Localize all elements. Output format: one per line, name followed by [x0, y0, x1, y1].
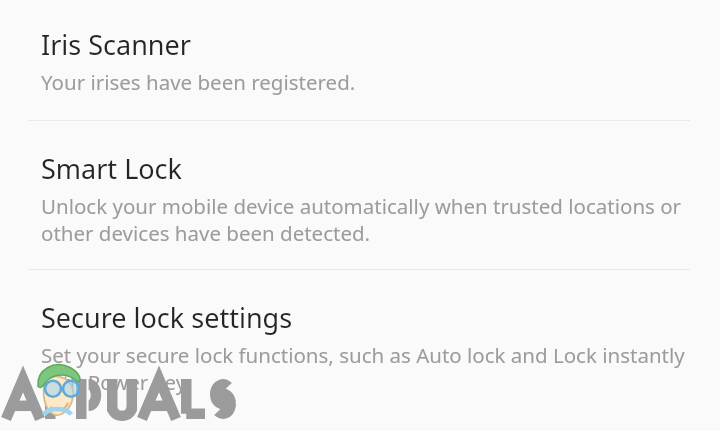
- button[interactable]: Iris Scanner: [0, 0, 720, 120]
- staticText: Unlock your mobile device automatically …: [41, 192, 690, 247]
- other: Appuals watermark: [0, 0, 720, 431]
- staticText: Set your secure lock functions, such as …: [41, 341, 690, 396]
- staticText: Smart Lock: [41, 150, 182, 187]
- button[interactable]: Smart Lock: [0, 121, 720, 269]
- button[interactable]: Secure lock settings: [0, 270, 720, 416]
- staticText: Iris Scanner: [41, 26, 191, 63]
- staticText: Your irises have been registered.: [41, 68, 356, 96]
- staticText: Secure lock settings: [41, 299, 293, 336]
